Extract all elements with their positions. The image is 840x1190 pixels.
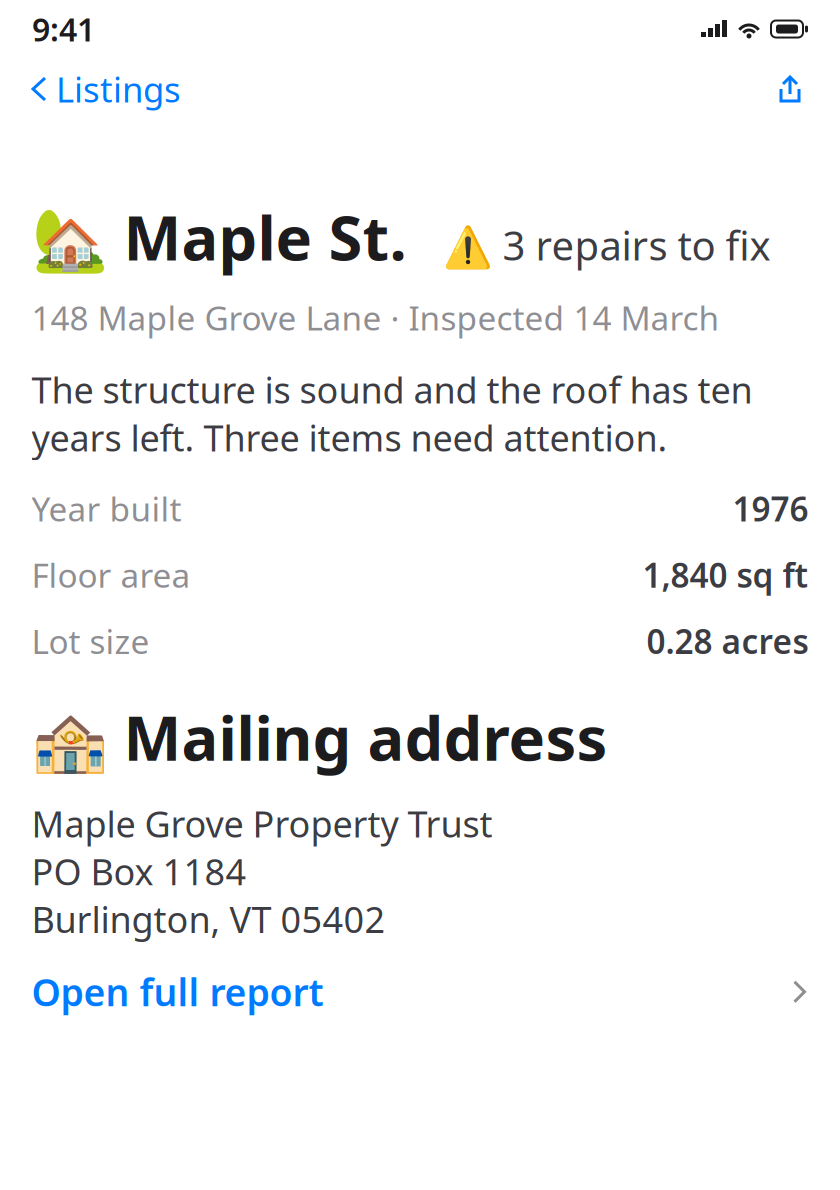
staticText: 9:41 bbox=[32, 8, 95, 50]
staticText: 148 Maple Grove Lane · Inspected 14 Marc… bbox=[31, 295, 719, 340]
staticText: Year built bbox=[31, 486, 181, 531]
staticText: Floor area bbox=[31, 553, 190, 597]
staticText: 1,840 sq ft bbox=[642, 553, 808, 597]
staticText: 1976 bbox=[732, 486, 808, 531]
staticText: 0.28 acres bbox=[646, 619, 808, 663]
staticText: Lot size bbox=[31, 619, 149, 663]
staticText: The structure is sound and the roof has … bbox=[31, 366, 752, 461]
staticText: Maple Grove Property Trust PO Box 1184 B… bbox=[31, 800, 492, 943]
staticText: Listings bbox=[56, 66, 181, 112]
button[interactable]: Share report bbox=[768, 65, 812, 113]
staticText: Open full report bbox=[31, 967, 323, 1017]
staticText: ⚠️ 3 repairs to fix bbox=[442, 218, 770, 271]
button[interactable]: Listings bbox=[28, 56, 193, 122]
staticText: 🏡 Maple St. bbox=[31, 196, 406, 277]
staticText: 🏤 Mailing address bbox=[31, 696, 607, 777]
button[interactable]: Open full report bbox=[31, 943, 808, 1041]
